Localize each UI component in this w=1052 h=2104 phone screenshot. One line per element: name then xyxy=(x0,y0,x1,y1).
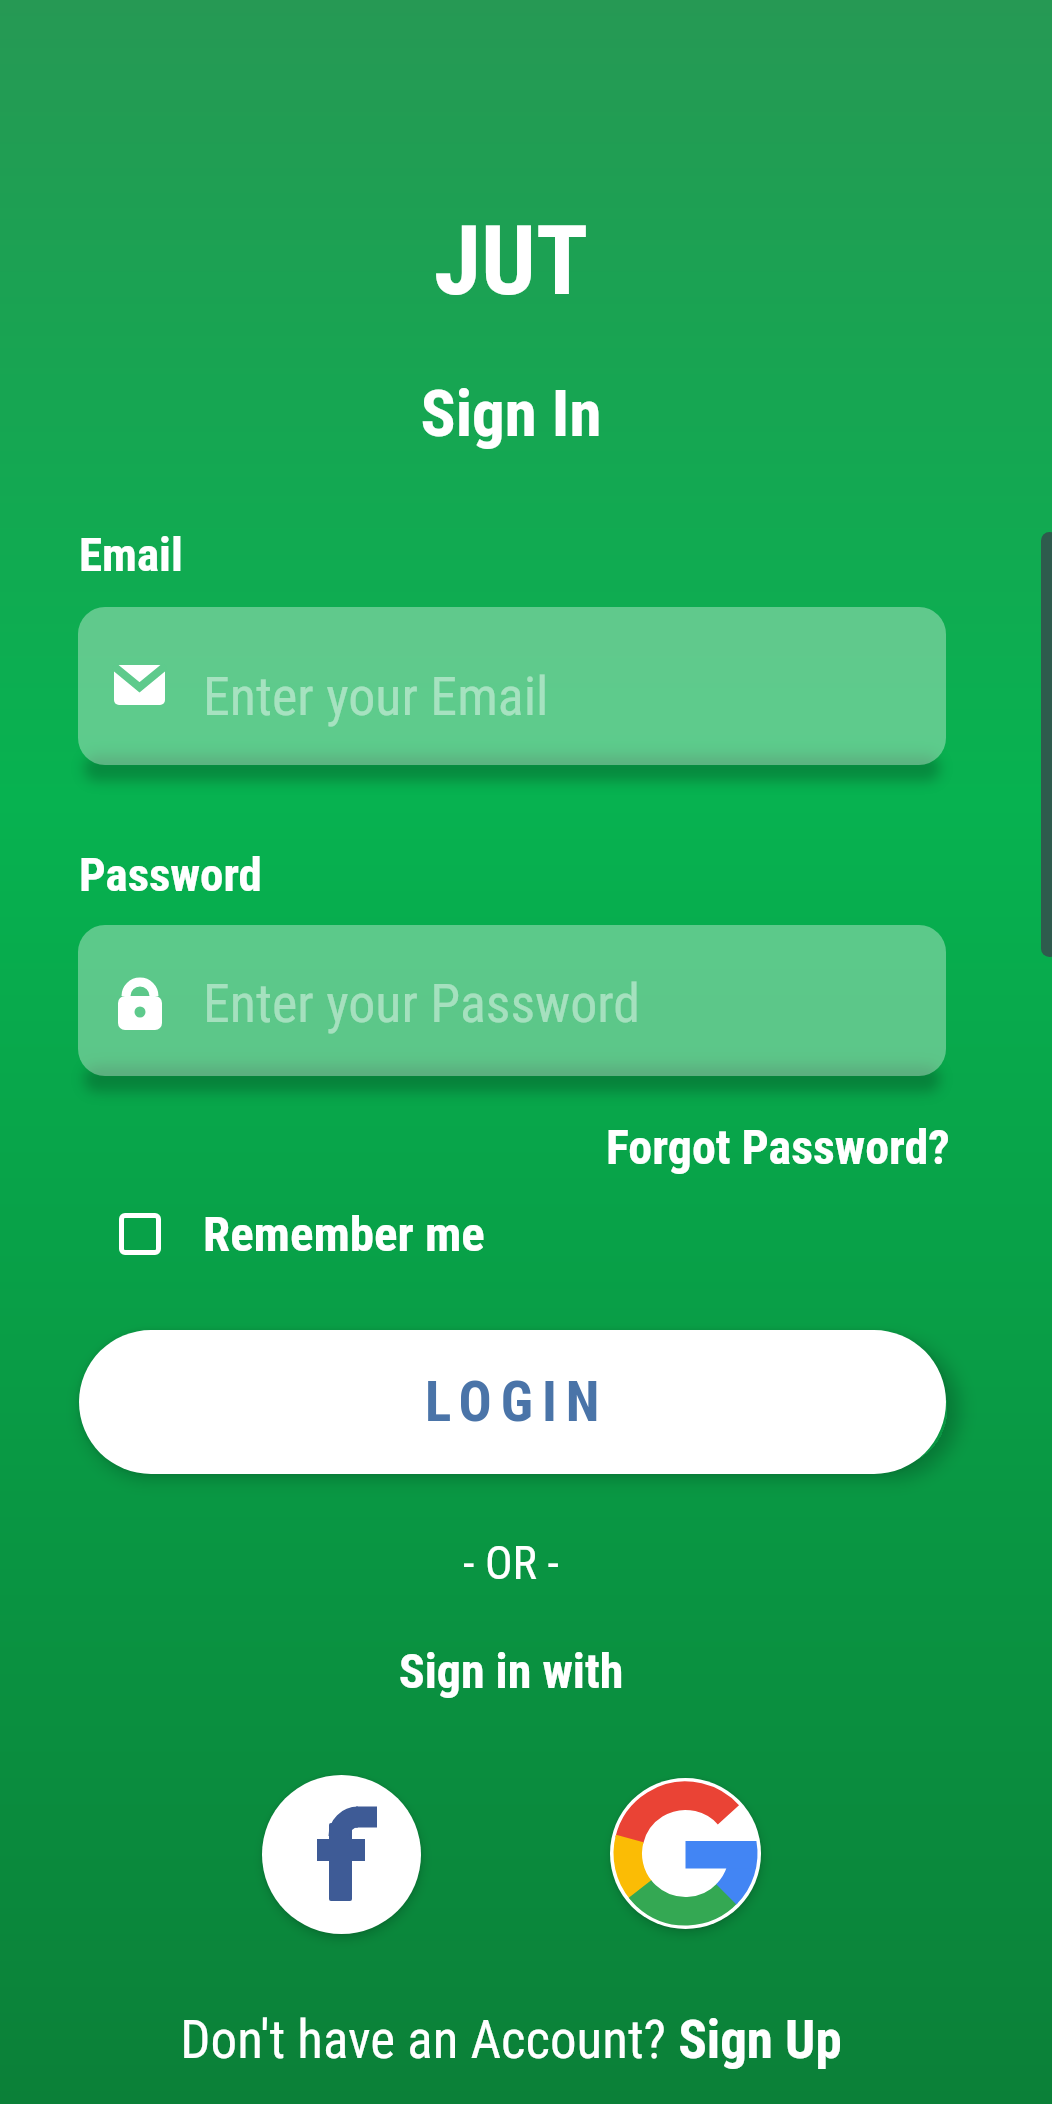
staticText: JUT xyxy=(0,205,1022,318)
staticText: Password xyxy=(79,847,262,902)
button[interactable] xyxy=(610,1778,761,1929)
button[interactable]: Don't have an Account? Sign Up xyxy=(0,2009,1022,2071)
staticText: Enter your Password xyxy=(203,972,640,1035)
staticText: Email xyxy=(79,527,183,582)
button[interactable]: LOGIN xyxy=(79,1330,946,1474)
button[interactable]: Enter your Email xyxy=(78,607,946,765)
staticText: - OR - xyxy=(0,1536,1022,1590)
button[interactable]: Forgot Password? xyxy=(606,1119,950,1175)
staticText: LOGIN xyxy=(425,1370,609,1434)
button[interactable] xyxy=(262,1775,421,1934)
button[interactable]: Remember me xyxy=(203,1206,485,1263)
staticText: Sign In xyxy=(0,376,1022,452)
button[interactable]: Enter your Password xyxy=(78,925,946,1076)
staticText: Sign in with xyxy=(0,1643,1022,1699)
button[interactable] xyxy=(119,1213,161,1255)
staticText: Enter your Email xyxy=(203,665,549,728)
